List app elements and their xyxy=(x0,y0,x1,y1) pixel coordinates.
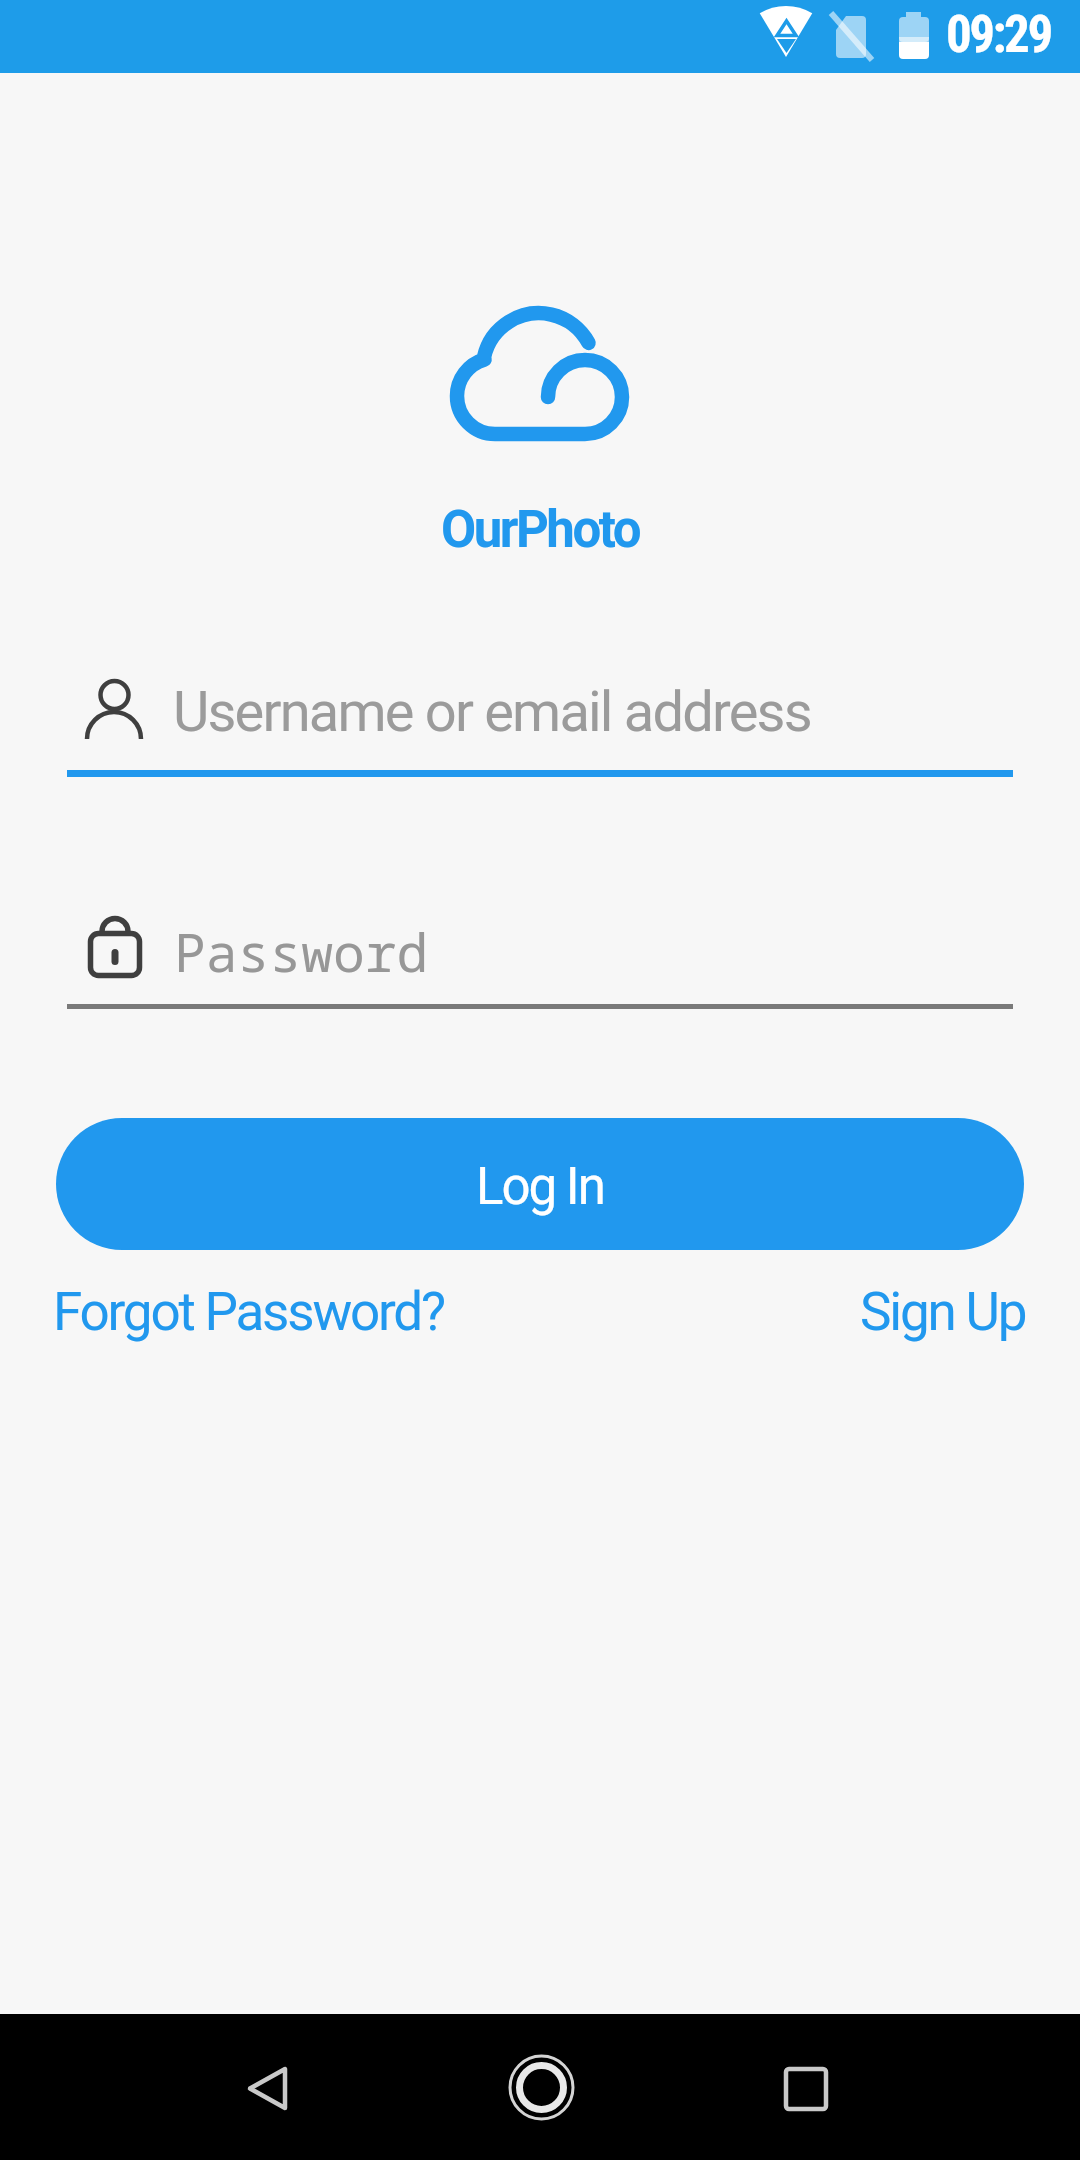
button[interactable] xyxy=(230,2062,306,2142)
button[interactable]: Password xyxy=(67,890,1013,1009)
button[interactable]: Username or email address xyxy=(67,655,1013,777)
staticText: Username or email address xyxy=(173,679,811,745)
button[interactable] xyxy=(766,2049,846,2129)
button[interactable]: Sign Up xyxy=(860,1281,1026,1343)
staticText: Log In xyxy=(476,1157,604,1217)
button[interactable]: Forgot Password? xyxy=(53,1281,444,1343)
button[interactable]: Log In xyxy=(56,1118,1024,1250)
staticText: Sign Up xyxy=(860,1281,1026,1343)
staticText: Password xyxy=(174,915,429,987)
staticText: Forgot Password? xyxy=(53,1281,444,1343)
staticText: 09:29 xyxy=(946,5,1051,65)
button[interactable] xyxy=(501,2061,581,2141)
staticText: OurPhoto xyxy=(441,500,640,560)
